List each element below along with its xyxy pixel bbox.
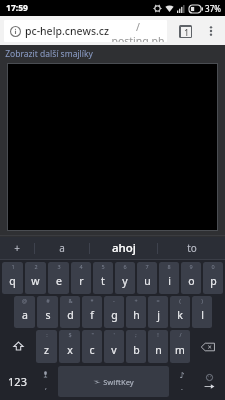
staticText: 1 xyxy=(11,263,15,270)
staticText: j xyxy=(157,308,160,322)
staticText: @ xyxy=(22,297,27,304)
staticText: * xyxy=(90,297,94,304)
staticText: h xyxy=(133,308,140,322)
button[interactable]: Voice input xyxy=(33,364,57,399)
staticText: to xyxy=(187,241,197,255)
staticText: , xyxy=(45,382,47,392)
staticText: " xyxy=(91,331,94,338)
staticText: 123 xyxy=(8,374,27,389)
button[interactable]: + xyxy=(126,296,146,328)
staticText: c xyxy=(89,343,95,357)
staticText: $ xyxy=(68,331,72,338)
button[interactable]: / xyxy=(170,330,190,363)
staticText: b xyxy=(133,343,140,357)
staticText: d xyxy=(67,308,74,322)
staticText: k xyxy=(177,308,183,322)
button[interactable]: 4 xyxy=(71,262,91,294)
button[interactable]: 6 xyxy=(115,262,135,294)
button[interactable]: 8 xyxy=(159,262,179,294)
button[interactable]: & xyxy=(60,296,80,328)
staticText: x xyxy=(67,343,73,357)
button[interactable]: Emoji xyxy=(170,364,194,399)
button[interactable]: 123 xyxy=(1,364,33,399)
button[interactable]: 9 xyxy=(181,262,201,294)
staticText: / xyxy=(179,331,182,338)
button[interactable]: Enter xyxy=(194,364,224,399)
staticText: ahoj xyxy=(112,240,136,256)
staticText: w xyxy=(31,274,40,288)
staticText: 1 xyxy=(184,27,189,37)
staticText: ( xyxy=(179,297,181,304)
button[interactable]: 1 xyxy=(2,262,23,294)
staticText: ! xyxy=(157,331,159,338)
staticText: & xyxy=(68,297,73,304)
staticText: 4 xyxy=(79,263,83,270)
staticText: = xyxy=(156,297,160,304)
button[interactable]: ; xyxy=(126,330,146,363)
button[interactable]: More options xyxy=(199,19,223,43)
staticText: : xyxy=(46,331,48,338)
staticText: n xyxy=(155,343,162,357)
staticText: ) xyxy=(201,297,203,304)
staticText: # xyxy=(46,297,50,304)
button[interactable]: Space xyxy=(58,366,169,397)
staticText: m xyxy=(175,343,185,357)
staticText: t xyxy=(101,274,105,288)
button[interactable]: a xyxy=(35,237,89,259)
staticText: 6 xyxy=(123,263,127,270)
staticText: SwiftKey xyxy=(103,377,134,387)
staticText: f xyxy=(90,308,94,322)
staticText: + xyxy=(134,297,138,304)
staticText: 8 xyxy=(167,263,171,270)
staticText: 9 xyxy=(189,263,193,270)
staticText: + xyxy=(14,241,20,255)
staticText: 7 xyxy=(145,263,149,270)
staticText: 3 xyxy=(57,263,61,270)
button[interactable]: Tabs xyxy=(173,19,197,43)
staticText: v xyxy=(111,343,117,357)
button[interactable]: Shift xyxy=(2,330,34,363)
staticText: o xyxy=(188,274,195,288)
button[interactable]: 5 xyxy=(93,262,113,294)
button[interactable]: # xyxy=(37,296,58,328)
button[interactable]: - xyxy=(104,296,124,328)
staticText: y xyxy=(122,274,128,288)
button[interactable]: @ xyxy=(14,296,35,328)
staticText: a xyxy=(59,241,65,255)
button[interactable]: ' xyxy=(104,330,124,363)
button[interactable]: 7 xyxy=(137,262,157,294)
button[interactable]: Site information xyxy=(4,20,167,42)
staticText: /posting.php xyxy=(109,20,167,42)
button[interactable]: ahoj xyxy=(90,237,157,259)
staticText: g xyxy=(111,308,118,322)
button[interactable]: " xyxy=(82,330,102,363)
button[interactable]: 2 xyxy=(25,262,46,294)
staticText: u xyxy=(144,274,151,288)
button[interactable]: 3 xyxy=(48,262,69,294)
staticText: q xyxy=(9,274,16,288)
staticText: a xyxy=(22,308,28,322)
staticText: z xyxy=(44,343,49,357)
button[interactable]: ) xyxy=(192,296,212,328)
button[interactable]: Backspace xyxy=(192,330,223,363)
button[interactable]: : xyxy=(36,330,57,363)
staticText: ; xyxy=(135,331,137,338)
staticText: . xyxy=(181,383,183,393)
button[interactable]: 0 xyxy=(203,262,223,294)
staticText: i xyxy=(168,274,171,288)
button[interactable]: ( xyxy=(170,296,190,328)
button[interactable]: ! xyxy=(148,330,168,363)
button[interactable]: Zobrazit další smajlíky xyxy=(5,48,93,60)
button[interactable]: to xyxy=(158,237,225,259)
staticText: 5 xyxy=(101,263,105,270)
button[interactable]: = xyxy=(148,296,168,328)
button[interactable]: + xyxy=(0,237,34,259)
button[interactable]: * xyxy=(82,296,102,328)
staticText: s xyxy=(45,308,51,322)
staticText: r xyxy=(79,274,84,288)
staticText: Zobrazit další smajlíky xyxy=(5,48,93,60)
staticText: l xyxy=(201,308,204,322)
button[interactable]: $ xyxy=(59,330,80,363)
staticText: p xyxy=(210,274,217,288)
